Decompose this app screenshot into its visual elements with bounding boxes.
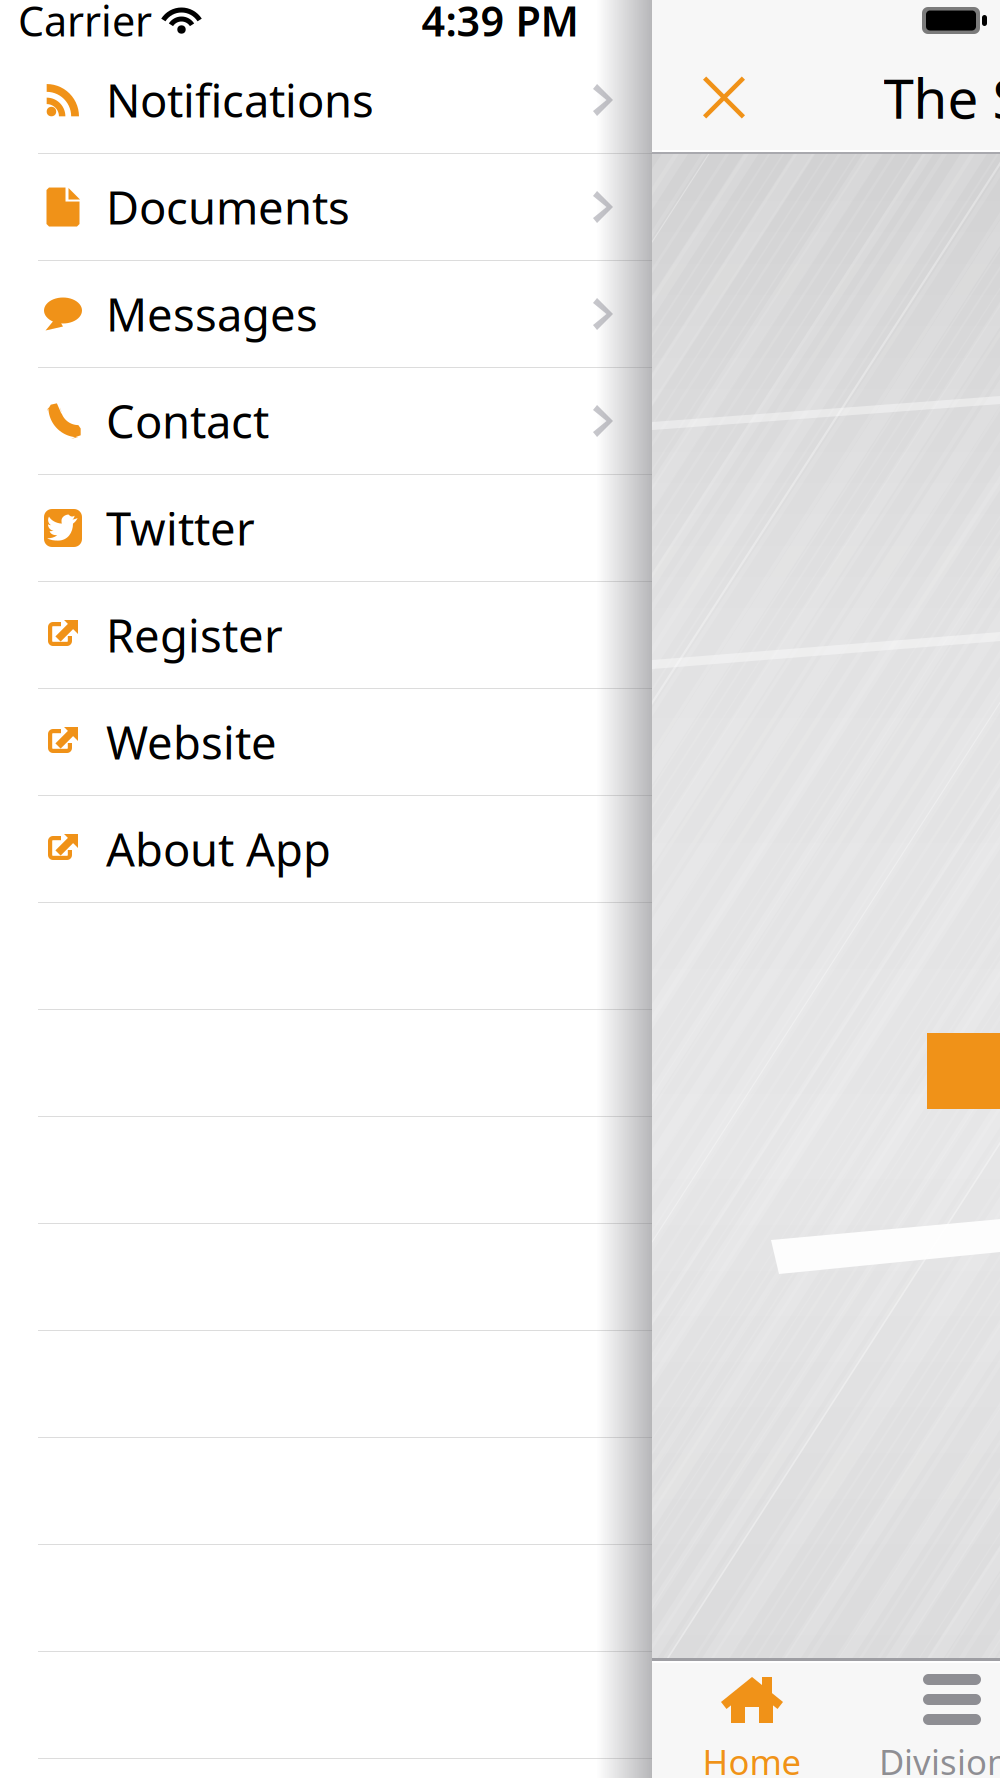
button[interactable]: Register xyxy=(0,582,652,689)
button[interactable]: About App xyxy=(0,796,652,903)
staticText: Register xyxy=(106,605,283,665)
button[interactable]: Close xyxy=(676,41,772,154)
staticText: 4:39 PM xyxy=(421,0,578,48)
staticText: Contact xyxy=(106,391,269,451)
staticText: Messages xyxy=(106,284,318,344)
staticText: Carrier xyxy=(18,0,152,48)
staticText: Home xyxy=(702,1738,801,1778)
staticText: The Sounders Soccer xyxy=(883,61,1000,134)
staticText: Website xyxy=(106,712,277,772)
button[interactable]: Divisions xyxy=(852,1658,1000,1778)
staticText: Divisions xyxy=(879,1738,1000,1778)
staticText: Documents xyxy=(106,177,350,237)
button[interactable]: Messages xyxy=(0,261,652,368)
staticText: Notifications xyxy=(106,70,374,130)
staticText: Twitter xyxy=(106,498,255,558)
staticText: About App xyxy=(106,819,331,879)
button[interactable]: Twitter xyxy=(0,475,652,582)
button[interactable]: Documents xyxy=(0,154,652,261)
button[interactable]: Contact xyxy=(0,368,652,475)
button[interactable]: Notifications xyxy=(0,47,652,154)
button[interactable]: Website xyxy=(0,689,652,796)
button[interactable]: Home xyxy=(652,1658,852,1778)
